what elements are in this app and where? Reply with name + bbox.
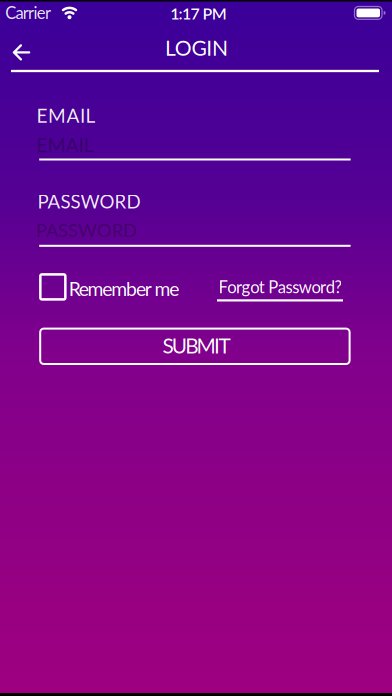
staticText: 1:17 PM — [170, 4, 227, 23]
staticText: EMAIL — [36, 104, 95, 127]
staticText: Remember me — [69, 277, 179, 300]
button[interactable]: Back — [5, 36, 37, 68]
staticText: PASSWORD — [37, 190, 140, 212]
staticText: Carrier — [5, 3, 51, 22]
staticText: EMAIL — [36, 133, 94, 156]
staticText: SUBMIT — [162, 333, 230, 358]
button[interactable]: Remember me — [39, 273, 179, 301]
button[interactable]: Forgot Password? — [217, 277, 343, 301]
staticText: PASSWORD — [36, 219, 137, 241]
staticText: Forgot Password? — [219, 277, 341, 297]
button[interactable]: SUBMIT — [39, 328, 351, 365]
staticText: LOGIN — [165, 35, 228, 60]
